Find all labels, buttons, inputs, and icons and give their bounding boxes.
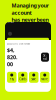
staticText: Managing your account [11,2,48,16]
staticText: Save [31,77,36,81]
staticText: Account overview [7,42,30,45]
staticText: Pay [10,77,14,81]
staticText: Cards [19,77,26,81]
staticText: has never been easier. [11,16,48,30]
staticText: Send [43,54,47,61]
staticText: $4,820.00 [7,46,17,68]
staticText: 9:41 [8,20,15,24]
staticText: More [41,77,48,81]
